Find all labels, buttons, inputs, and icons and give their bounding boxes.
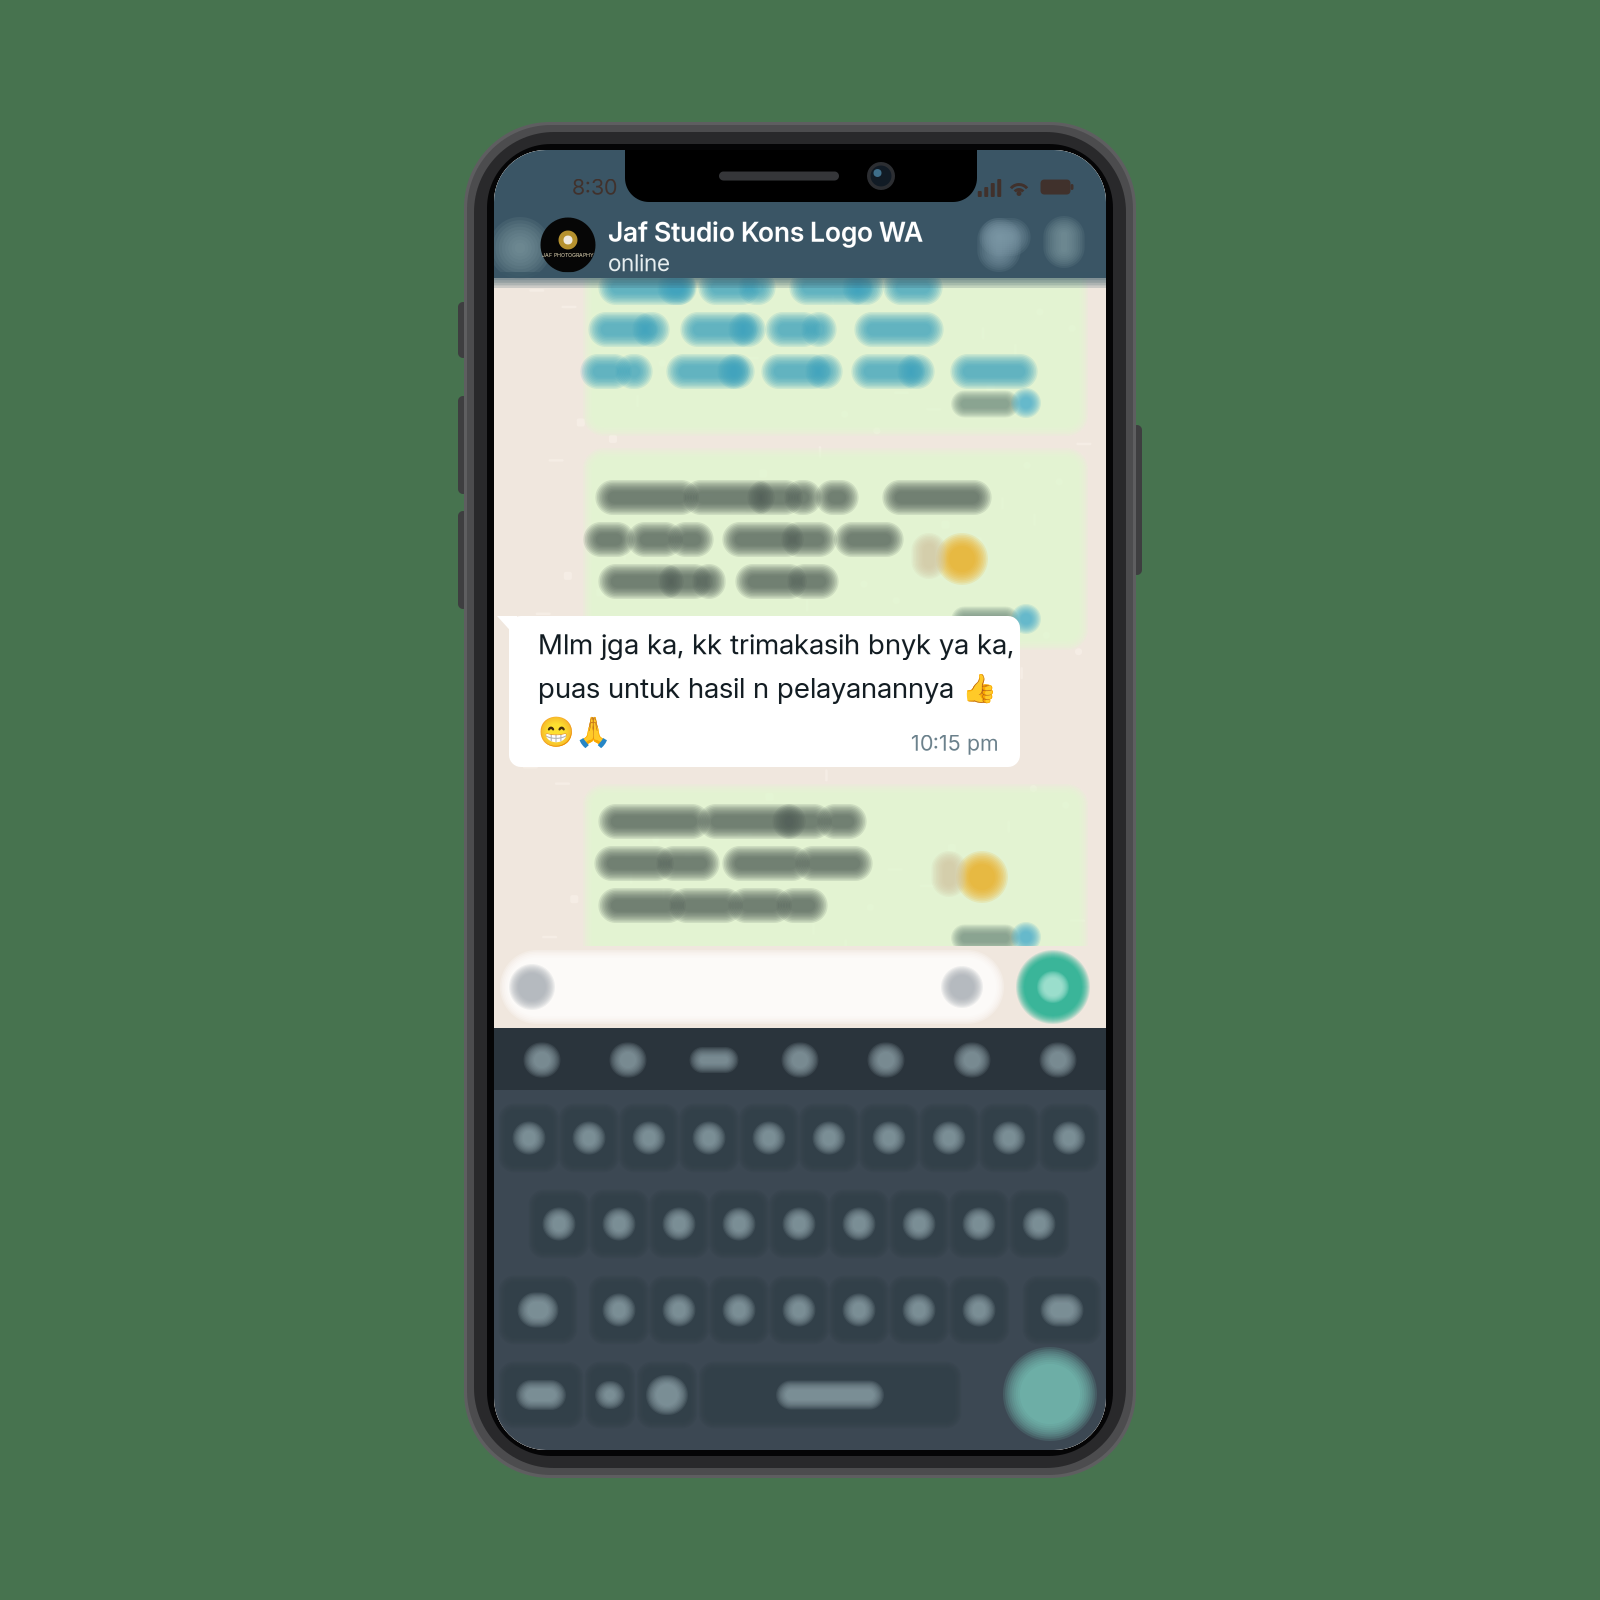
staticText: 10:15 pm [911,730,999,756]
button[interactable]: Emoji [639,1364,695,1426]
button[interactable]: Voice input [996,1350,1104,1438]
button[interactable]: o [981,1106,1037,1170]
button[interactable]: Contact photo [540,217,596,273]
staticText: Mlm jga ka, kk trimakasih bnyk ya ka, [538,627,1014,661]
staticText: Jaf Studio Kons Logo WA [608,216,923,248]
button[interactable]: Shift [501,1278,575,1342]
button[interactable]: v [771,1278,827,1342]
staticText: online [608,249,670,277]
button[interactable]: Message field [504,953,1000,1021]
button[interactable]: Jaf Studio Kons Logo WA [608,216,980,248]
button[interactable]: y [801,1106,857,1170]
button[interactable]: w [561,1106,617,1170]
button[interactable]: Suggestion [499,1036,585,1084]
button[interactable]: h [831,1192,887,1256]
button[interactable]: Space [701,1364,959,1426]
button[interactable]: n [891,1278,947,1342]
button[interactable]: i [921,1106,977,1170]
staticText: puas untuk hasil n pelayanannya 👍 [538,671,997,705]
button[interactable]: f [711,1192,767,1256]
button[interactable]: s [591,1192,647,1256]
staticText: 8:30 [572,174,617,200]
button[interactable]: Suggestion [1015,1036,1101,1084]
button[interactable]: Numbers [501,1364,581,1426]
button[interactable]: Send [1010,950,1096,1024]
button[interactable]: Attach [976,216,1028,268]
button[interactable]: d [651,1192,707,1256]
button[interactable]: Suggestion [671,1036,757,1084]
button[interactable]: q [501,1106,557,1170]
button[interactable]: u [861,1106,917,1170]
button[interactable]: Suggestion [757,1036,843,1084]
staticText: JAF PHOTOGRAPHY [542,252,594,258]
button[interactable]: Backspace [1025,1278,1099,1342]
button[interactable]: g [771,1192,827,1256]
button[interactable]: Period [587,1364,633,1426]
button[interactable]: c [711,1278,767,1342]
button[interactable]: p [1041,1106,1097,1170]
staticText: 😁🙏 [538,715,612,749]
button[interactable]: m [951,1278,1007,1342]
button[interactable]: l [1011,1192,1067,1256]
button[interactable]: z [591,1278,647,1342]
button[interactable]: Suggestion [585,1036,671,1084]
button[interactable]: Suggestion [843,1036,929,1084]
button[interactable]: a [531,1192,587,1256]
button[interactable]: e [621,1106,677,1170]
button[interactable]: More options [1044,216,1084,268]
button[interactable]: r [681,1106,737,1170]
button[interactable]: t [741,1106,797,1170]
button[interactable]: k [951,1192,1007,1256]
button[interactable]: b [831,1278,887,1342]
button[interactable]: x [651,1278,707,1342]
button[interactable]: j [891,1192,947,1256]
button[interactable]: Suggestion [929,1036,1015,1084]
